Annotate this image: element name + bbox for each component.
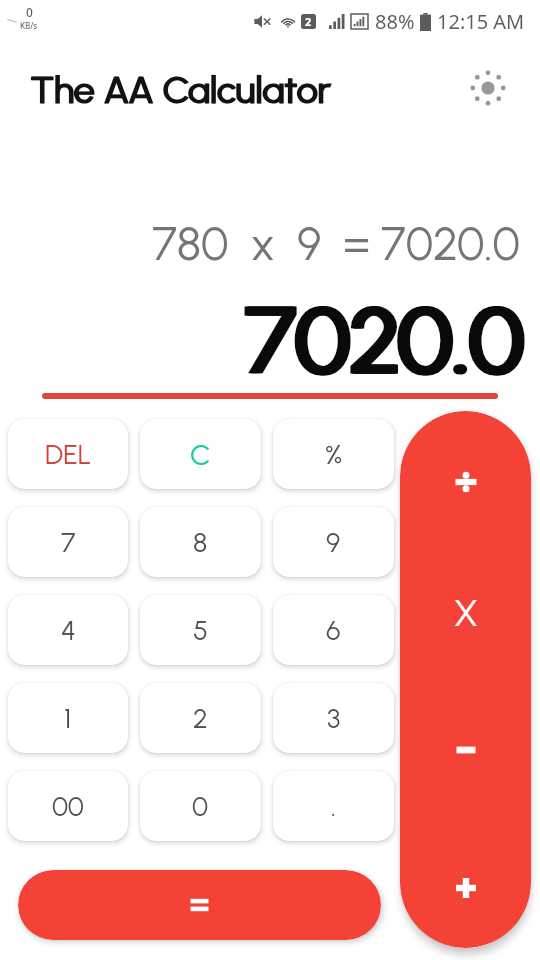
- staticText: 2: [193, 702, 208, 734]
- staticText: .: [331, 790, 336, 822]
- button[interactable]: Multiply: [400, 553, 531, 673]
- staticText: 7: [61, 526, 76, 558]
- button[interactable]: 00: [8, 771, 128, 841]
- staticText: 7020.0: [248, 285, 526, 395]
- button[interactable]: Subtract: [400, 673, 531, 827]
- button[interactable]: 2: [140, 683, 261, 753]
- button[interactable]: 0: [140, 771, 261, 841]
- button[interactable]: DEL: [8, 419, 128, 489]
- staticText: 3: [327, 702, 341, 734]
- button[interactable]: 3: [273, 683, 394, 753]
- staticText: 5: [193, 614, 208, 646]
- button[interactable]: 1: [8, 683, 128, 753]
- button[interactable]: 5: [140, 595, 261, 665]
- staticText: 8: [193, 526, 208, 558]
- staticText: KB/s: [20, 20, 38, 31]
- button[interactable]: [18, 870, 381, 940]
- staticText: The AA Calculator: [31, 67, 332, 112]
- staticText: 2: [305, 14, 312, 29]
- staticText: 0: [192, 790, 209, 822]
- staticText: 7020.0: [247, 285, 525, 395]
- button[interactable]: 7: [8, 507, 128, 577]
- button[interactable]: 9: [273, 507, 394, 577]
- button[interactable]: .: [273, 771, 394, 841]
- staticText: 00: [52, 790, 84, 822]
- staticText: 6: [326, 614, 341, 646]
- staticText: %: [325, 438, 343, 470]
- staticText: 88%: [375, 8, 415, 35]
- staticText: 780 x 9 = 7020.0: [152, 216, 520, 271]
- button[interactable]: 4: [8, 595, 128, 665]
- staticText: DEL: [45, 438, 92, 470]
- staticText: 12:15 AM: [437, 8, 525, 35]
- button[interactable]: 6: [273, 595, 394, 665]
- staticText: C: [190, 437, 211, 472]
- staticText: 9: [326, 526, 341, 558]
- button[interactable]: C: [140, 419, 261, 489]
- staticText: X: [454, 592, 478, 635]
- staticText: 7020.0: [244, 285, 522, 395]
- button[interactable]: Add: [400, 827, 531, 948]
- staticText: 0: [26, 4, 33, 20]
- staticText: The AA Calculator: [30, 67, 331, 112]
- staticText: 4: [61, 614, 76, 646]
- button[interactable]: %: [273, 419, 394, 489]
- button[interactable]: Toggle theme: [464, 64, 512, 112]
- staticText: 1: [64, 702, 72, 734]
- staticText: 7020.0: [246, 285, 524, 395]
- button[interactable]: Divide: [400, 411, 531, 553]
- button[interactable]: 8: [140, 507, 261, 577]
